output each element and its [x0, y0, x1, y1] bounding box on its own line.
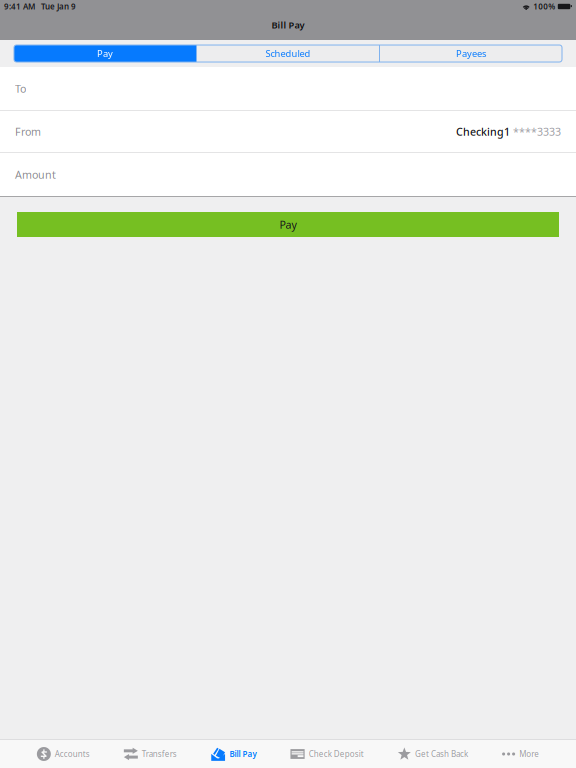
button[interactable]: More	[502, 740, 539, 768]
staticText: Tue Jan 9	[41, 1, 76, 12]
button[interactable]: From	[0, 111, 576, 152]
staticText: ****3333	[513, 124, 561, 139]
button[interactable]: Check Deposit	[290, 740, 364, 768]
staticText: Checking1	[456, 124, 510, 139]
staticText: Check Deposit	[309, 749, 364, 759]
button[interactable]: Amount	[0, 153, 576, 196]
staticText: Pay	[279, 217, 296, 232]
staticText: Scheduled	[265, 47, 310, 60]
staticText: 100%	[533, 1, 555, 12]
staticText: 9:41 AM	[4, 1, 35, 12]
button[interactable]: Transfers	[124, 740, 177, 768]
button[interactable]: Accounts	[37, 740, 90, 768]
staticText: Bill Pay	[229, 749, 256, 759]
staticText: To	[15, 81, 26, 96]
button[interactable]: Get Cash Back	[398, 740, 468, 768]
staticText: Bill Pay	[271, 19, 304, 31]
button[interactable]: Payees	[380, 45, 562, 62]
staticText: Pay	[97, 47, 113, 60]
staticText: More	[519, 749, 539, 759]
button[interactable]: Pay	[14, 45, 196, 62]
staticText: Get Cash Back	[415, 749, 468, 759]
button[interactable]: Pay	[17, 212, 559, 237]
staticText: From	[15, 124, 41, 139]
staticText: Payees	[456, 47, 486, 60]
button[interactable]: Bill Pay	[211, 740, 256, 768]
staticText: Transfers	[142, 749, 177, 759]
staticText: Accounts	[55, 749, 90, 759]
staticText: Amount	[15, 167, 56, 182]
button[interactable]: Scheduled	[197, 45, 379, 62]
